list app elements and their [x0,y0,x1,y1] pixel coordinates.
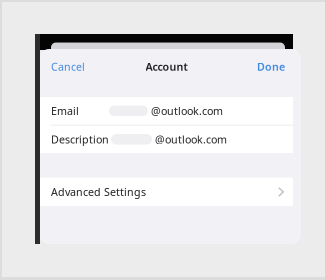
button[interactable]: Cancel [51,56,91,76]
button[interactable]: Done [249,56,285,76]
staticText: Account [145,59,187,74]
staticText: Done [257,59,285,74]
staticText: @outlook.com [151,104,223,118]
staticText: Cancel [51,59,85,74]
staticText: Advanced Settings [51,185,146,199]
staticText: @outlook.com [155,132,227,146]
button[interactable]: Advanced Settings [40,178,293,206]
staticText: Description [51,132,109,146]
staticText: Email [51,104,79,118]
